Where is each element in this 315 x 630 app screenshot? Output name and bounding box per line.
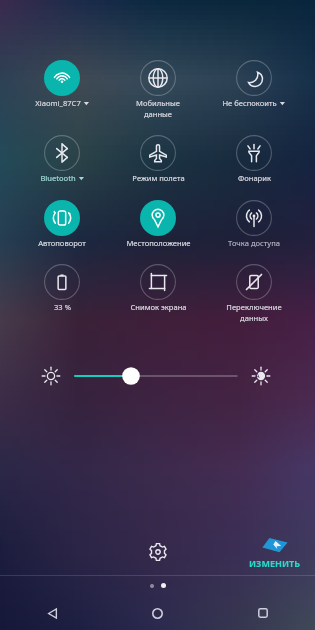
staticText: Точка доступа — [228, 238, 280, 248]
button[interactable]: ИЗМЕНИТЬ — [249, 535, 301, 569]
button[interactable]: Xiaomi_87C7 — [14, 60, 110, 109]
staticText: Автоповорот — [38, 238, 86, 248]
staticText: A — [255, 371, 260, 381]
staticText: Снимок экрана — [130, 302, 187, 312]
button[interactable]: Автоповорот — [14, 200, 110, 248]
button[interactable]: Back — [0, 596, 105, 630]
button[interactable]: Режим полета — [110, 135, 206, 183]
staticText: Режим полета — [132, 173, 185, 183]
staticText: Bluetooth — [40, 173, 76, 183]
button[interactable]: Home — [105, 596, 210, 630]
staticText: Местоположение — [126, 238, 191, 248]
button[interactable]: Не беспокоить — [206, 60, 302, 109]
staticText: Переключение данных — [226, 302, 282, 323]
staticText: 33 % — [54, 302, 71, 312]
staticText: Фонарик — [238, 173, 271, 183]
button[interactable]: Переключение данных — [206, 264, 302, 323]
button[interactable]: Фонарик — [206, 135, 302, 183]
button[interactable]: Точка доступа — [206, 200, 302, 248]
button[interactable]: Снимок экрана — [110, 264, 206, 312]
button[interactable]: Recents — [210, 596, 315, 630]
button[interactable]: 33 % — [14, 264, 110, 312]
button[interactable]: Мобильные данные — [110, 60, 206, 119]
button[interactable]: Settings — [143, 537, 173, 567]
button[interactable]: Местоположение — [110, 200, 206, 248]
staticText: Мобильные данные — [136, 98, 180, 119]
staticText: Не беспокоить — [222, 98, 277, 108]
staticText: ИЗМЕНИТЬ — [249, 557, 301, 569]
staticText: Xiaomi_87C7 — [35, 98, 81, 108]
button[interactable]: A — [0, 361, 315, 391]
button[interactable]: Bluetooth — [14, 135, 110, 184]
